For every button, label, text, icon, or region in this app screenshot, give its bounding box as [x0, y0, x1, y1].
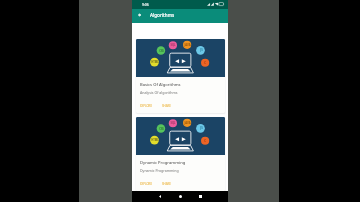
staticText: HTML: [151, 138, 159, 142]
button[interactable]: SHARE: [162, 182, 171, 186]
staticText: Dynamic Programming: [140, 160, 186, 166]
button[interactable]: EXPLORE: [140, 182, 152, 186]
button[interactable]: SHARE: [162, 104, 171, 108]
staticText: SHARE: [162, 104, 171, 108]
staticText: JAVA: [184, 121, 191, 125]
staticText: CSS: [159, 127, 164, 131]
button[interactable]: HTML: [136, 117, 225, 191]
staticText: Basics Of Algorithms: [140, 82, 181, 88]
staticText: 9:06: [142, 2, 149, 7]
staticText: Analysis Of algorithms: [140, 90, 178, 95]
staticText: C: [204, 61, 206, 65]
staticText: SQL: [170, 43, 176, 47]
button[interactable]: Recent apps: [190, 191, 210, 202]
button[interactable]: Back: [132, 9, 146, 23]
staticText: JS: [200, 48, 203, 52]
button[interactable]: Home: [170, 191, 190, 202]
staticText: EXPLORE: [140, 104, 152, 108]
button[interactable]: EXPLORE: [140, 104, 152, 108]
staticText: SHARE: [162, 182, 171, 186]
staticText: CSS: [159, 49, 164, 53]
staticText: HTML: [151, 60, 159, 64]
staticText: EXPLORE: [140, 182, 152, 186]
staticText: Algorithms: [150, 12, 175, 18]
staticText: C: [204, 139, 206, 143]
staticText: JS: [200, 126, 203, 130]
staticText: JAVA: [184, 43, 191, 47]
button[interactable]: Back: [150, 191, 170, 202]
button[interactable]: HTML: [136, 39, 225, 113]
staticText: Dynamic Programming: [140, 168, 179, 173]
staticText: SQL: [170, 121, 176, 125]
